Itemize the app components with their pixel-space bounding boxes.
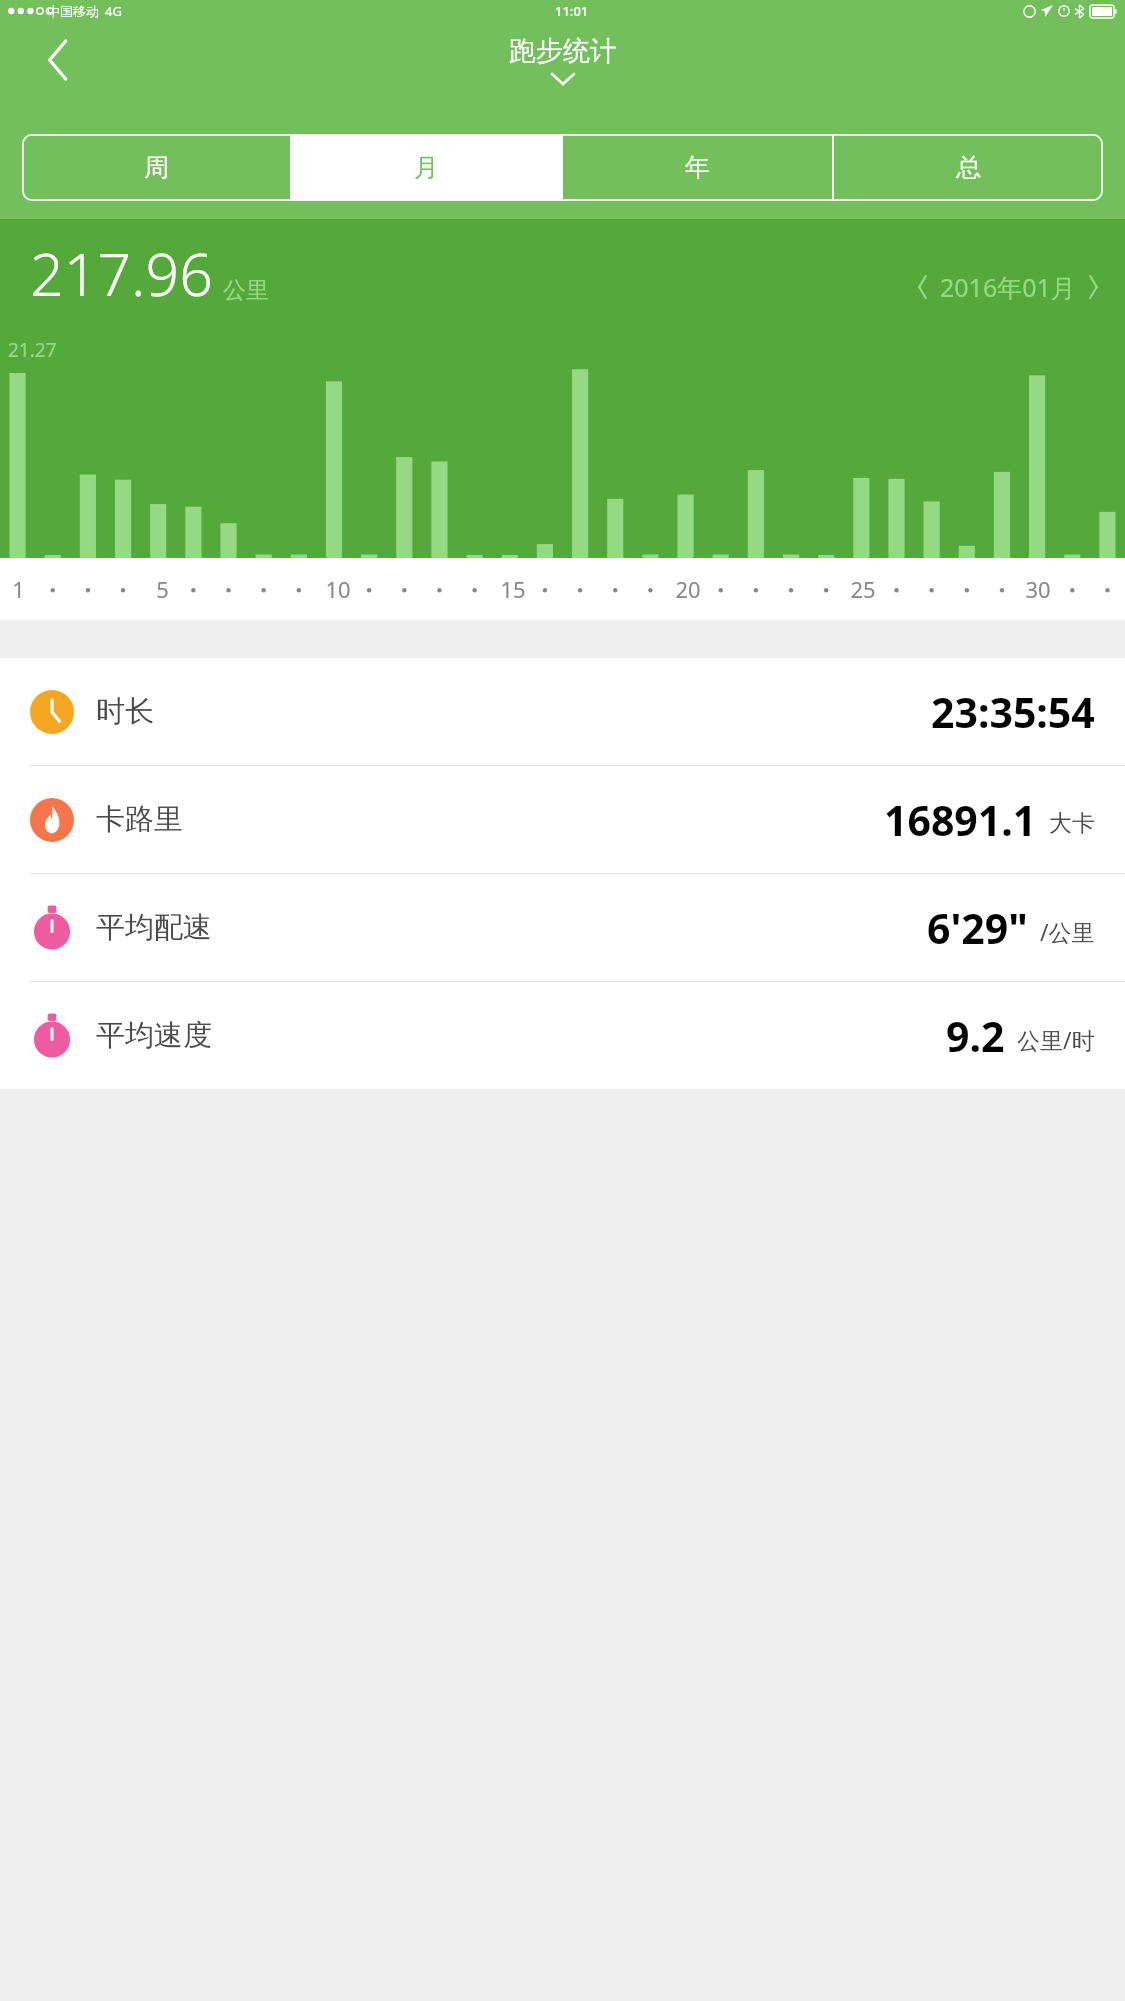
staticText: 25 [850,574,876,604]
staticText: 30 [1025,574,1051,604]
staticText: 1 [12,574,25,604]
staticText: 平均速度 [96,1017,212,1054]
staticText: 年 [685,152,710,183]
staticText: 公里 [223,276,269,305]
staticText: 平均配速 [96,909,212,946]
staticText: 公里/时 [1017,1024,1095,1055]
staticText: 15 [500,574,526,604]
staticText: 16891.1 [884,792,1037,848]
button[interactable]: 月 [292,134,561,201]
button[interactable]: 年 [563,134,832,201]
button[interactable]: 总 [834,134,1103,201]
staticText: 21.27 [8,337,57,363]
staticText: 10 [325,574,351,604]
staticText: 11:01 [555,2,589,20]
button[interactable]: 周 [22,134,290,201]
staticText: 时长 [96,693,154,730]
button[interactable]: 平均配速 [0,874,1125,981]
staticText: 跑步统计 [509,34,617,68]
staticText: 4G [105,2,122,20]
staticText: 月 [414,152,439,183]
button[interactable]: 时长 [0,658,1125,765]
staticText: 9.2 [946,1008,1005,1064]
button[interactable]: 返回 [30,32,86,88]
staticText: 中国移动 [47,3,99,19]
staticText: 5 [156,574,169,604]
staticText: 总 [956,152,981,183]
staticText: 大卡 [1049,809,1095,838]
button[interactable]: 卡路里 [0,766,1125,873]
staticText: 20 [675,574,701,604]
staticText: 卡路里 [96,801,183,838]
button[interactable]: 2016年01月 [917,270,1099,304]
button[interactable]: 平均速度 [0,982,1125,1089]
staticText: 周 [144,152,169,183]
staticText: 23:35:54 [931,684,1095,740]
staticText: 2016年01月 [940,270,1076,304]
button[interactable]: 跑步统计 [509,34,617,84]
staticText: /公里 [1040,916,1095,947]
staticText: 6'29" [927,900,1028,956]
staticText: 217.96 [30,233,213,313]
